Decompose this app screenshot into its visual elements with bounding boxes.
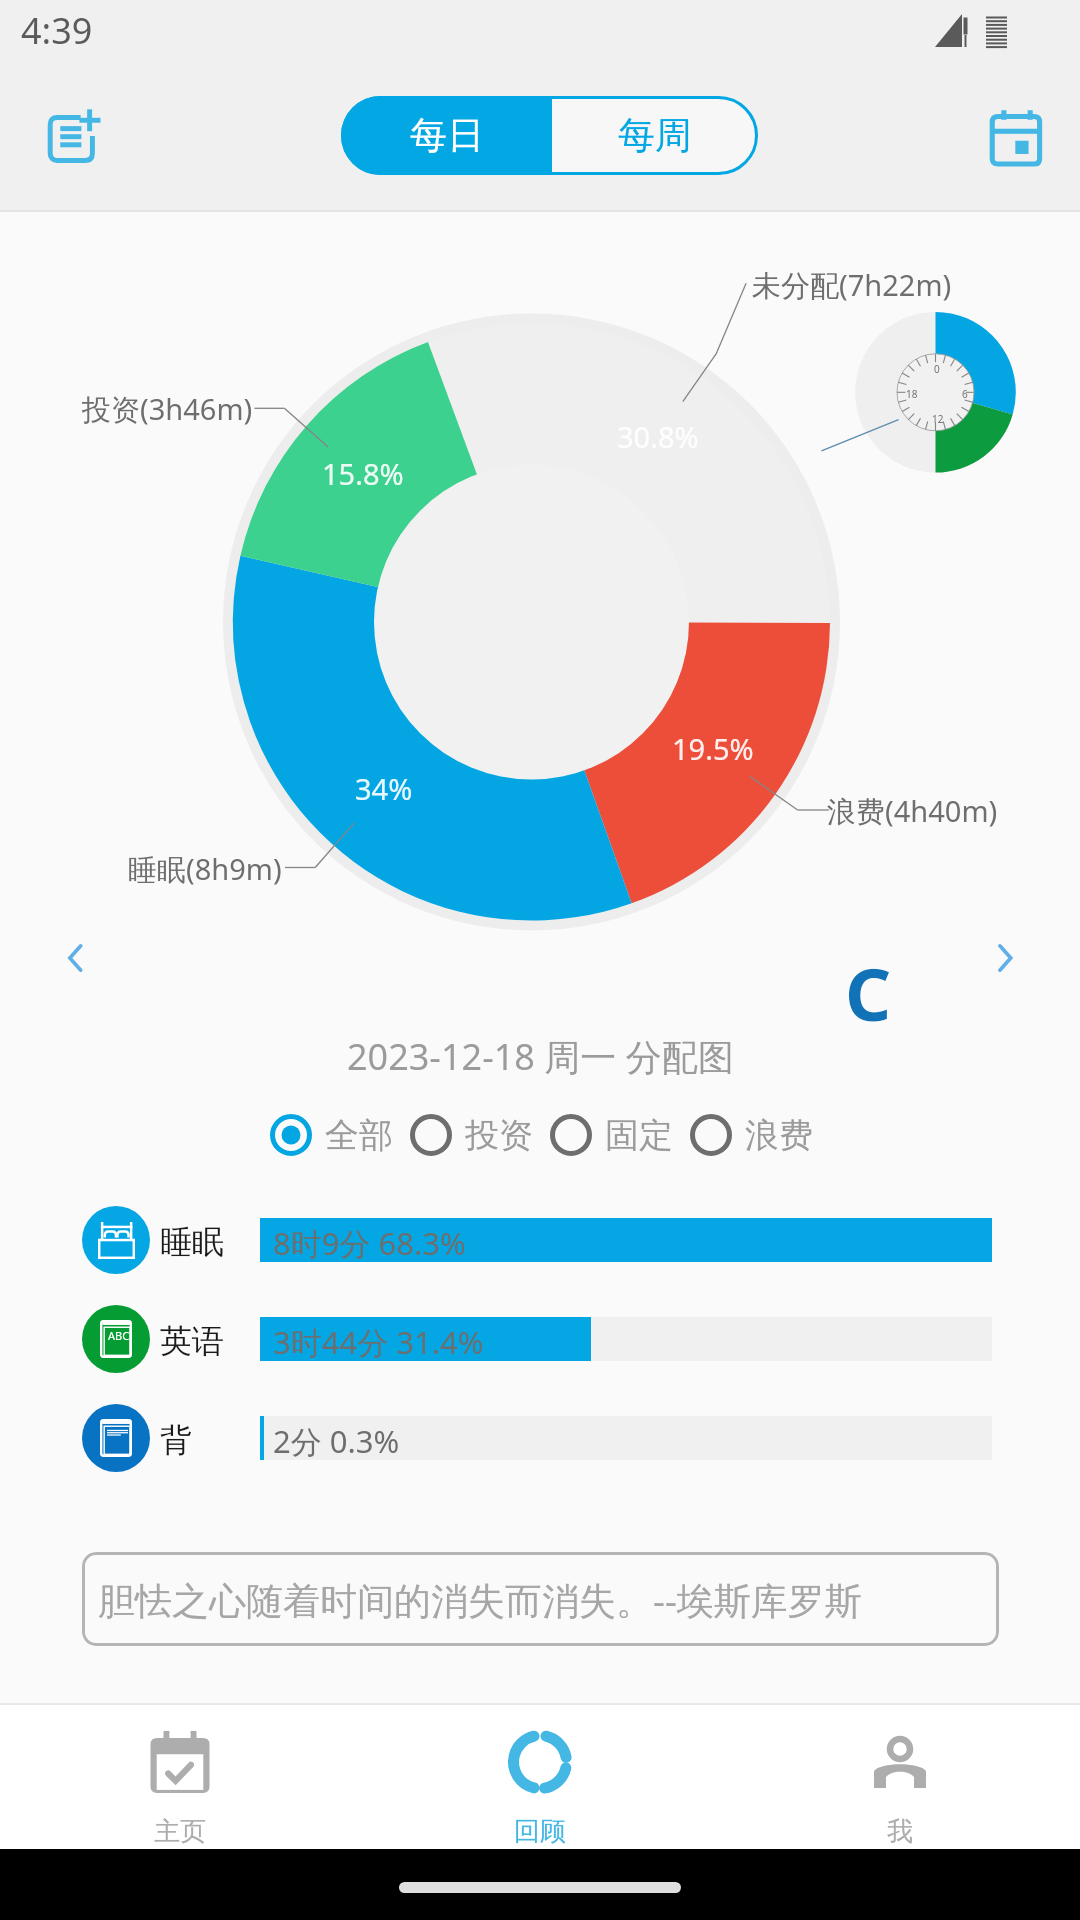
staticText: 我 <box>887 1815 913 1848</box>
staticText: 4:39 <box>21 6 93 55</box>
staticText: 3时44分 31.4% <box>273 1321 484 1363</box>
staticText: 背 <box>160 1420 192 1460</box>
staticText: 6 <box>962 387 968 401</box>
staticText: 18 <box>906 387 918 401</box>
staticText: 15.8% <box>322 454 404 493</box>
staticText: 投资(3h46m) <box>82 389 253 429</box>
staticText: 固定 <box>605 1114 673 1157</box>
staticText: 34% <box>355 769 413 808</box>
button[interactable]: 每周 <box>552 96 758 175</box>
button[interactable]: 每日 <box>341 96 552 175</box>
button[interactable]: 浪费 <box>688 1112 813 1158</box>
staticText: 睡眠 <box>160 1222 224 1262</box>
staticText: 浪费 <box>745 1114 813 1157</box>
button[interactable]: 全部 <box>268 1112 393 1158</box>
button[interactable]: 胆怯之心随着时间的消失而消失。--埃斯库罗斯 <box>82 1552 999 1646</box>
staticText: 8时9分 68.3% <box>273 1222 466 1264</box>
staticText: 睡眠(8h9m) <box>128 849 282 889</box>
button[interactable]: 回顾 <box>360 1705 720 1849</box>
staticText: 2分 0.3% <box>273 1420 400 1462</box>
button[interactable]: 主页 <box>0 1705 360 1849</box>
button[interactable]: Previous day <box>43 926 107 990</box>
staticText: 2023-12-18 周一 分配图 <box>347 1032 734 1081</box>
button[interactable]: Add record <box>25 85 125 185</box>
staticText: 19.5% <box>672 729 754 768</box>
staticText: 浪费(4h40m) <box>827 791 998 831</box>
staticText: 每日 <box>410 112 484 159</box>
button[interactable]: Next day <box>973 926 1037 990</box>
staticText: 30.8% <box>617 417 699 456</box>
staticText: 全部 <box>325 1114 393 1157</box>
button[interactable]: 我 <box>720 1705 1080 1849</box>
button[interactable]: Calendar <box>967 86 1067 186</box>
staticText: 主页 <box>154 1815 206 1848</box>
button[interactable]: 固定 <box>548 1112 673 1158</box>
staticText: 未分配(7h22m) <box>752 265 952 305</box>
staticText: 英语 <box>160 1321 224 1361</box>
staticText: 胆怯之心随着时间的消失而消失。--埃斯库罗斯 <box>98 1574 862 1625</box>
button[interactable]: 投资 <box>408 1112 533 1158</box>
staticText: 每周 <box>618 112 692 159</box>
staticText: C <box>845 944 892 1042</box>
staticText: ABC <box>108 1328 130 1343</box>
staticText: 0 <box>934 362 940 376</box>
staticText: 12 <box>932 412 944 426</box>
staticText: 投资 <box>465 1114 533 1157</box>
staticText: 回顾 <box>514 1815 566 1848</box>
